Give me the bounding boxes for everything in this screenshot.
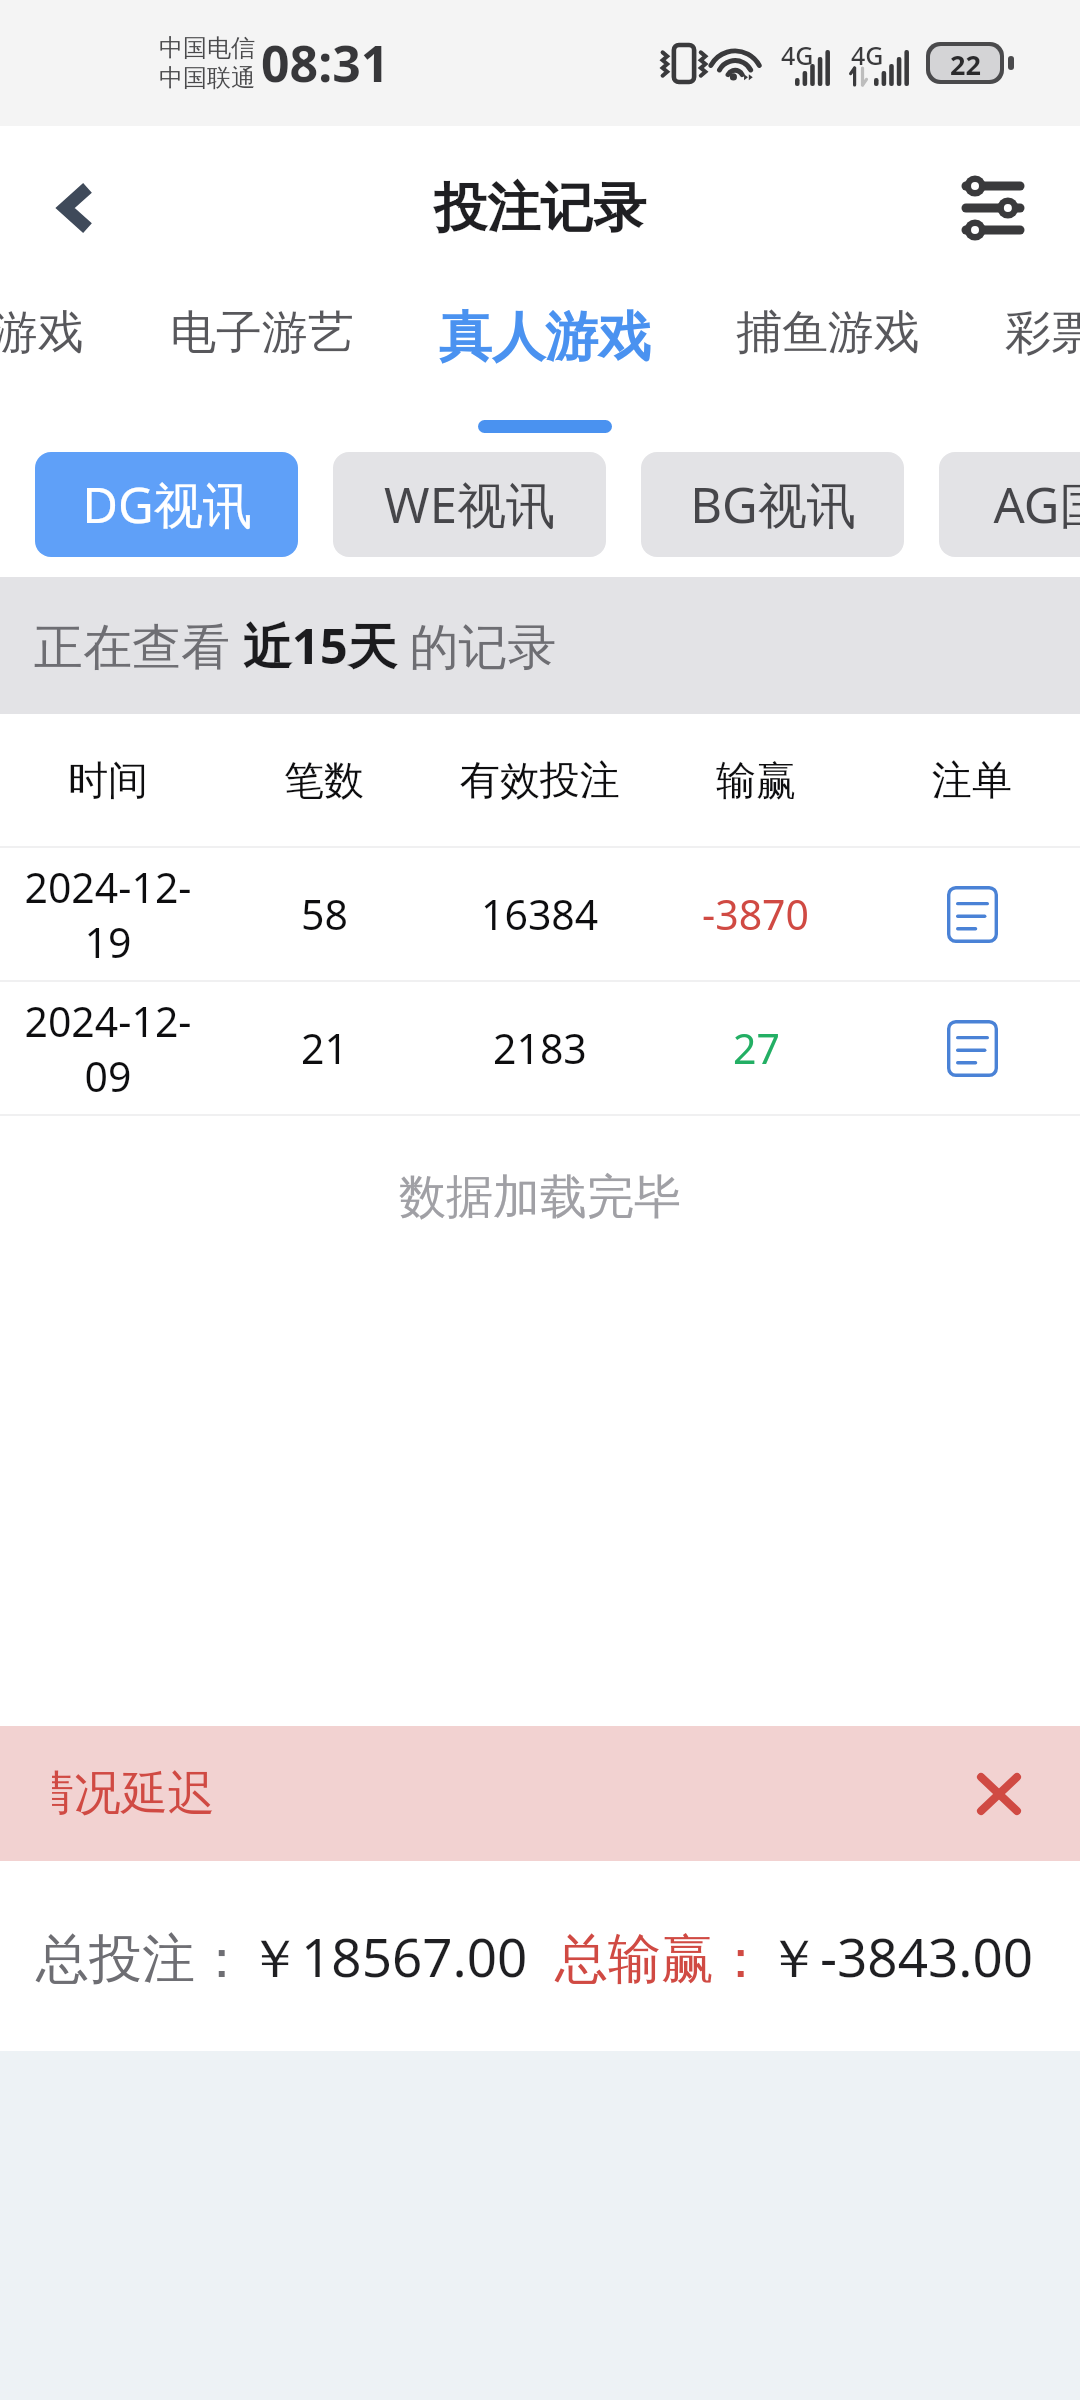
staticText: 注单 — [932, 755, 1012, 805]
staticText: 中国联通 — [159, 63, 255, 93]
staticText: 有效投注 — [460, 755, 620, 805]
button[interactable]: 游戏 — [0, 304, 96, 410]
staticText: 2183 — [493, 1020, 587, 1076]
staticText: WE视讯 — [384, 471, 555, 538]
staticText: 数据加载完毕 — [399, 1168, 681, 1227]
button[interactable]: BG视讯 — [641, 452, 904, 557]
button[interactable]: DG视讯 — [35, 452, 298, 557]
staticText: -3870 — [702, 886, 810, 942]
staticText: 2024-12-19 — [16, 859, 200, 970]
staticText: 输赢 — [716, 755, 796, 805]
staticText: 58 — [301, 886, 348, 942]
staticText: AG国际 — [993, 471, 1080, 538]
button[interactable]: 捕鱼游戏 — [712, 304, 944, 410]
staticText: 笔数 — [284, 755, 364, 805]
staticText: 时间 — [68, 755, 148, 805]
staticText: 22 — [950, 46, 981, 80]
staticText: 4G — [851, 38, 884, 72]
staticText: 4G — [781, 38, 814, 72]
staticText: 27 — [733, 1020, 780, 1076]
staticText: 21 — [301, 1020, 348, 1076]
staticText: 捕鱼游戏 — [736, 304, 920, 362]
staticText: 电子游艺 — [170, 304, 354, 362]
staticText: 2024-12-09 — [16, 993, 200, 1104]
button[interactable]: Filter — [918, 126, 1068, 290]
staticText: 游戏 — [0, 304, 84, 362]
staticText: DG视讯 — [82, 471, 252, 538]
button[interactable]: 彩票 — [993, 304, 1080, 410]
button[interactable]: 2024-12-19 — [0, 848, 1080, 980]
staticText: 16384 — [481, 886, 599, 942]
button[interactable]: AG国际 — [939, 452, 1080, 557]
button[interactable]: 真人游戏 — [429, 304, 661, 410]
staticText: 投注记录 — [434, 175, 646, 242]
staticText: 08:31 — [261, 29, 390, 97]
staticText: 正在查看 近15天 的记录 — [34, 612, 557, 679]
staticText: 总投注：￥18567.00 总输赢：￥-3843.00 — [36, 1920, 1034, 1992]
button[interactable]: Order detail — [922, 998, 1022, 1098]
staticText: 情况延迟 — [52, 1764, 215, 1823]
staticText: 真人游戏 — [439, 304, 651, 371]
button[interactable]: Order detail — [922, 864, 1022, 964]
button[interactable]: Close — [962, 1757, 1036, 1831]
staticText: 中国电信 — [159, 33, 255, 63]
staticText: 彩票 — [1005, 304, 1080, 362]
button[interactable]: 2024-12-09 — [0, 982, 1080, 1114]
staticText: BG视讯 — [690, 471, 856, 538]
button[interactable]: Back — [0, 126, 150, 290]
button[interactable]: WE视讯 — [333, 452, 606, 557]
button[interactable]: 电子游艺 — [146, 304, 378, 410]
